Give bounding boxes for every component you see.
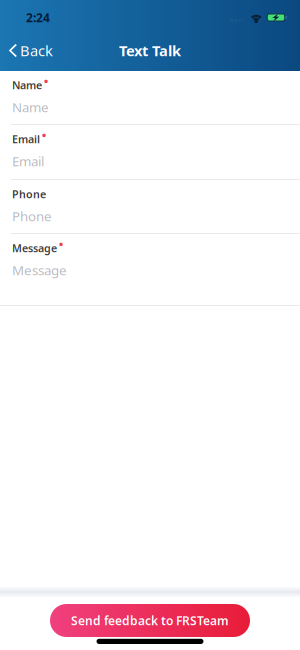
staticText: Email	[12, 132, 40, 146]
staticText: Email	[12, 152, 44, 170]
staticText: Send feedback to FRSTeam	[71, 612, 229, 628]
button[interactable]: Phone	[0, 201, 300, 225]
staticText: Name	[12, 78, 42, 92]
staticText: Message	[12, 241, 57, 255]
staticText: Message	[12, 261, 67, 279]
staticText: Back	[20, 41, 53, 60]
button[interactable]: Name	[0, 92, 300, 116]
staticText: Phone	[12, 207, 52, 225]
staticText: Phone	[12, 187, 46, 201]
button[interactable]: Send feedback to FRSTeam	[50, 604, 250, 637]
staticText: Text Talk	[119, 41, 181, 60]
staticText: Name	[12, 98, 49, 116]
button[interactable]: Message	[0, 255, 300, 279]
button[interactable]: Email	[0, 146, 300, 170]
button[interactable]: Back	[0, 35, 59, 65]
staticText: 2:24	[26, 9, 50, 25]
